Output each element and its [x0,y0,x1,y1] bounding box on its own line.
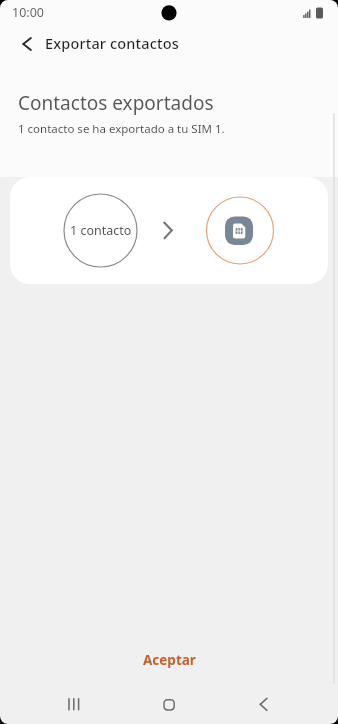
staticText: Aceptar [143,651,196,669]
button[interactable] [145,684,193,724]
staticText: Exportar contactos [45,33,179,53]
button[interactable] [8,30,42,60]
button[interactable] [240,684,288,724]
staticText: Contactos exportados [18,90,214,116]
button[interactable] [206,197,274,265]
staticText: 1 contacto [70,222,132,239]
staticText: 1 contacto se ha exportado a tu SIM 1. [18,121,225,137]
button[interactable]: Aceptar [109,642,229,678]
button[interactable] [48,684,96,724]
staticText: 10:00 [12,4,44,21]
